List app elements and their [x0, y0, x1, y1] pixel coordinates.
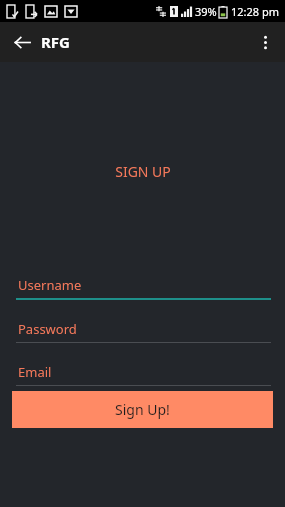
staticText: Password [18, 320, 77, 338]
staticText: RFG [41, 32, 70, 52]
staticText: Email [18, 363, 52, 381]
button[interactable]: More options [251, 28, 279, 56]
button[interactable]: Password [0, 320, 285, 343]
staticText: Username [18, 276, 82, 294]
staticText: 39% [195, 4, 217, 19]
staticText: SIGN UP [115, 162, 171, 181]
button[interactable]: Sign Up! [12, 391, 273, 428]
button[interactable]: Username [0, 276, 285, 300]
staticText: 12:28 pm [231, 4, 280, 19]
staticText: Sign Up! [115, 400, 170, 419]
button[interactable]: Back [8, 28, 36, 56]
button[interactable]: Email [0, 363, 285, 386]
